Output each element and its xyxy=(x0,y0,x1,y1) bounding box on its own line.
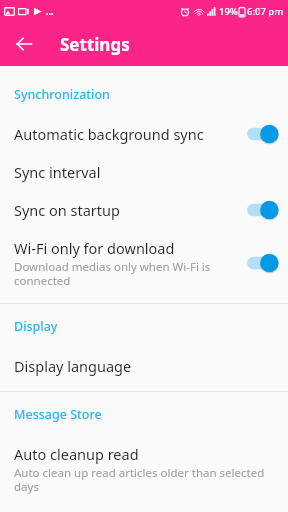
staticText: Message Store xyxy=(14,406,102,423)
button[interactable]: Toggle xyxy=(246,200,276,220)
button[interactable]: Wi-Fi only for download xyxy=(0,229,288,297)
button[interactable]: Automatic background sync xyxy=(0,115,288,153)
button[interactable]: Toggle xyxy=(246,124,276,144)
staticText: Wi-Fi only for download xyxy=(14,238,175,258)
staticText: Settings xyxy=(60,33,130,56)
staticText: 6:07 pm xyxy=(247,5,284,18)
staticText: Display xyxy=(14,318,58,335)
staticText: 19% xyxy=(219,5,238,18)
staticText: Synchronization xyxy=(14,86,110,103)
button[interactable]: Auto cleanup read xyxy=(0,435,288,503)
button[interactable]: Sync on startup xyxy=(0,191,288,229)
button[interactable]: Back xyxy=(8,28,40,60)
staticText: Display language xyxy=(14,356,132,376)
staticText: Automatic background sync xyxy=(14,124,204,144)
staticText: Auto cleanup read xyxy=(14,444,139,464)
button[interactable]: Sync interval xyxy=(0,153,288,191)
staticText: Sync interval xyxy=(14,162,101,182)
button[interactable]: Display language xyxy=(0,347,288,385)
staticText: Auto clean up read articles older than s… xyxy=(14,465,276,494)
button[interactable]: Toggle xyxy=(246,253,276,273)
staticText: Sync on startup xyxy=(14,200,120,220)
staticText: Download medias only when Wi-Fi is conne… xyxy=(14,259,238,288)
staticText: ... xyxy=(46,5,54,17)
